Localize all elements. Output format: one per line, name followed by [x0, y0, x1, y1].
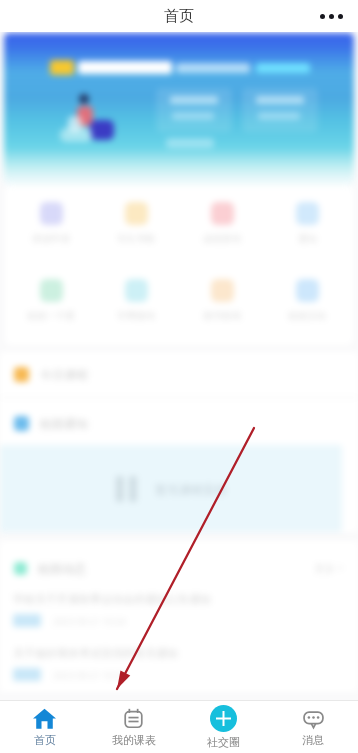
button[interactable]: 首页 [0, 701, 89, 753]
staticText: 学校关于开展秋季运动会的通知公告通知 [13, 592, 211, 606]
button[interactable]: 我的课表 [89, 701, 178, 753]
other: Add post [210, 705, 237, 732]
button[interactable]: 校园通知 [0, 401, 358, 445]
button[interactable]: 今日课程 [0, 352, 358, 396]
staticText: 关于做好期末考试安排的有关通知 [13, 646, 178, 660]
button[interactable]: 校园动态 更多 [0, 554, 358, 582]
button[interactable]: 消息 [268, 701, 358, 753]
button[interactable]: More options [315, 2, 347, 30]
staticText: 校园通知 [40, 416, 88, 431]
button[interactable]: 关于做好期末考试安排的有关通知 [0, 640, 358, 690]
button[interactable]: 学生考勤 [96, 202, 176, 252]
button[interactable]: 学费缴纳 [96, 279, 176, 329]
staticText: 社交圈 [207, 735, 240, 749]
staticText: 今日课程 [40, 367, 88, 382]
button[interactable]: 学校关于开展秋季运动会的通知公告通知 [0, 586, 358, 640]
button[interactable]: Banner [4, 33, 354, 185]
button[interactable]: 成绩查询 [182, 202, 262, 252]
staticText: 暂无课程安排 [155, 482, 227, 497]
button[interactable]: 图书借阅 [182, 279, 262, 329]
staticText: 我的课表 [112, 733, 156, 747]
staticText: 首页 [164, 7, 194, 26]
staticText: 校园动态 [38, 561, 86, 576]
button[interactable]: Add post [178, 701, 268, 753]
staticText: 首页 [34, 733, 56, 747]
button[interactable]: 校园活动 [267, 279, 347, 329]
button[interactable]: 校园一卡通 [11, 279, 91, 329]
button[interactable]: 暂无课程安排 [0, 445, 342, 532]
staticText: 2023-09-21 10:24 [53, 669, 126, 681]
staticText: 消息 [302, 733, 324, 747]
button[interactable]: 通知 [267, 202, 347, 252]
button[interactable]: 请假申请 [11, 202, 91, 252]
